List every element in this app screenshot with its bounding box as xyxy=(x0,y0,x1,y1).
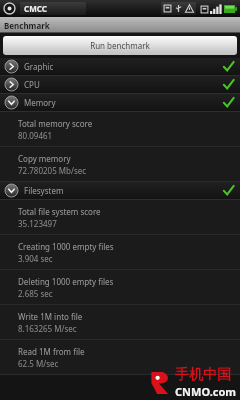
button[interactable]: Collapse xyxy=(0,182,240,199)
button[interactable]: Expand xyxy=(0,76,240,93)
staticText: Run benchmark xyxy=(90,40,150,51)
staticText: CMCC xyxy=(24,3,47,14)
staticText: Filesystem xyxy=(24,185,64,196)
staticText: 80.09461 xyxy=(18,130,53,141)
button[interactable]: Total memory score xyxy=(0,112,240,147)
staticText: Read 1M from file xyxy=(18,346,85,357)
staticText: Benchmark xyxy=(4,20,50,31)
staticText: 72.780205 Mb/sec xyxy=(18,165,87,176)
staticText: CNMO.com xyxy=(175,384,237,399)
other: Collapse xyxy=(5,184,18,197)
staticText: Write 1M into file xyxy=(18,311,83,322)
staticText: 62.5 M/sec xyxy=(18,358,59,369)
button[interactable]: Write 1M into file xyxy=(0,305,240,340)
button[interactable]: Total file system score xyxy=(0,200,240,235)
button[interactable]: Copy memory xyxy=(0,147,240,182)
staticText: Memory xyxy=(24,97,56,108)
staticText: 8.163265 M/sec xyxy=(18,323,77,334)
button[interactable]: Creating 1000 empty files xyxy=(0,235,240,270)
other: Expand xyxy=(5,78,18,91)
staticText: Total file system score xyxy=(18,206,101,217)
button[interactable]: Deleting 1000 empty files xyxy=(0,270,240,305)
staticText: 2.685 sec xyxy=(18,288,53,299)
staticText: 3.904 sec xyxy=(18,253,53,264)
button[interactable]: Run benchmark xyxy=(3,36,237,55)
button[interactable]: Read 1M from file xyxy=(0,340,240,375)
staticText: Graphic xyxy=(24,61,54,72)
staticText: Deleting 1000 empty files xyxy=(18,276,114,287)
staticText: 35.123497 xyxy=(18,218,57,229)
staticText: Copy memory xyxy=(18,153,71,164)
button[interactable]: Expand xyxy=(0,58,240,75)
staticText: Total memory score xyxy=(18,118,93,129)
other: Collapse xyxy=(5,96,18,109)
other: Expand xyxy=(5,60,18,73)
button[interactable]: Collapse xyxy=(0,94,240,111)
staticText: CPU xyxy=(24,79,40,90)
staticText: 手机中国 xyxy=(175,366,231,384)
staticText: Creating 1000 empty files xyxy=(18,241,114,252)
